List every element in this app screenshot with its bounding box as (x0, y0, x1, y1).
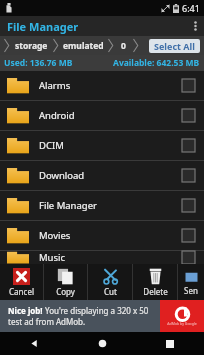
staticText: Cancel (9, 286, 34, 297)
staticText: Copy (56, 286, 75, 297)
button[interactable]: File Manager (0, 191, 204, 220)
button[interactable]: Android (0, 101, 204, 130)
button[interactable]: Select Alarms (174, 71, 202, 100)
staticText: Delete (143, 286, 168, 297)
button[interactable]: Cancel (0, 264, 43, 300)
staticText: Used: 136.76 MB (4, 57, 73, 69)
staticText: Cut (104, 286, 117, 297)
button[interactable]: Sen (178, 264, 204, 300)
staticText: 0 (121, 40, 126, 52)
button[interactable]: Cut (88, 264, 132, 300)
button[interactable]: Nice job! (0, 300, 204, 332)
staticText: File Manager (39, 199, 174, 212)
staticText: Android (39, 109, 174, 122)
button[interactable]: Select File Manager (174, 191, 202, 220)
staticText: 6:41 (182, 2, 200, 14)
button[interactable]: 0 (113, 36, 133, 55)
staticText: DCIM (39, 139, 174, 152)
button[interactable]: Select All (149, 39, 200, 53)
staticText: Download (39, 169, 174, 182)
button[interactable]: Delete (133, 264, 177, 300)
button[interactable]: Download (0, 161, 204, 190)
button[interactable]: Recents (136, 332, 204, 355)
button[interactable]: Select Download (174, 161, 202, 190)
button[interactable]: DCIM (0, 131, 204, 160)
staticText: Select All (154, 40, 195, 52)
staticText: storage (15, 40, 48, 52)
button[interactable]: emulated (58, 36, 108, 55)
other: AdMob (160, 300, 204, 332)
button[interactable]: Select DCIM (174, 131, 202, 160)
staticText: Nice job! (8, 305, 45, 316)
staticText: File Manager (7, 19, 79, 34)
staticText: test ad from AdMob. (8, 316, 86, 327)
staticText: Alarms (39, 79, 174, 92)
staticText: Movies (39, 229, 174, 242)
button[interactable]: Select Movies (174, 221, 202, 250)
button[interactable]: Home (68, 332, 136, 355)
button[interactable]: Select Music (174, 251, 202, 264)
staticText: AdMob by Google (167, 321, 197, 326)
button[interactable]: Alarms (0, 71, 204, 100)
staticText: Music (39, 251, 174, 264)
staticText: You're displaying a 320 x 50 (45, 305, 149, 316)
button[interactable]: Movies (0, 221, 204, 250)
button[interactable]: storage (9, 36, 53, 55)
staticText: Available: 642.53 MB (113, 57, 200, 69)
button[interactable]: Music (0, 251, 204, 264)
button[interactable]: Back (0, 332, 68, 355)
staticText: Sen (184, 285, 198, 296)
staticText: emulated (63, 40, 104, 52)
button[interactable]: Copy (44, 264, 87, 300)
button[interactable]: Select Android (174, 101, 202, 130)
button[interactable]: More options (186, 16, 204, 36)
